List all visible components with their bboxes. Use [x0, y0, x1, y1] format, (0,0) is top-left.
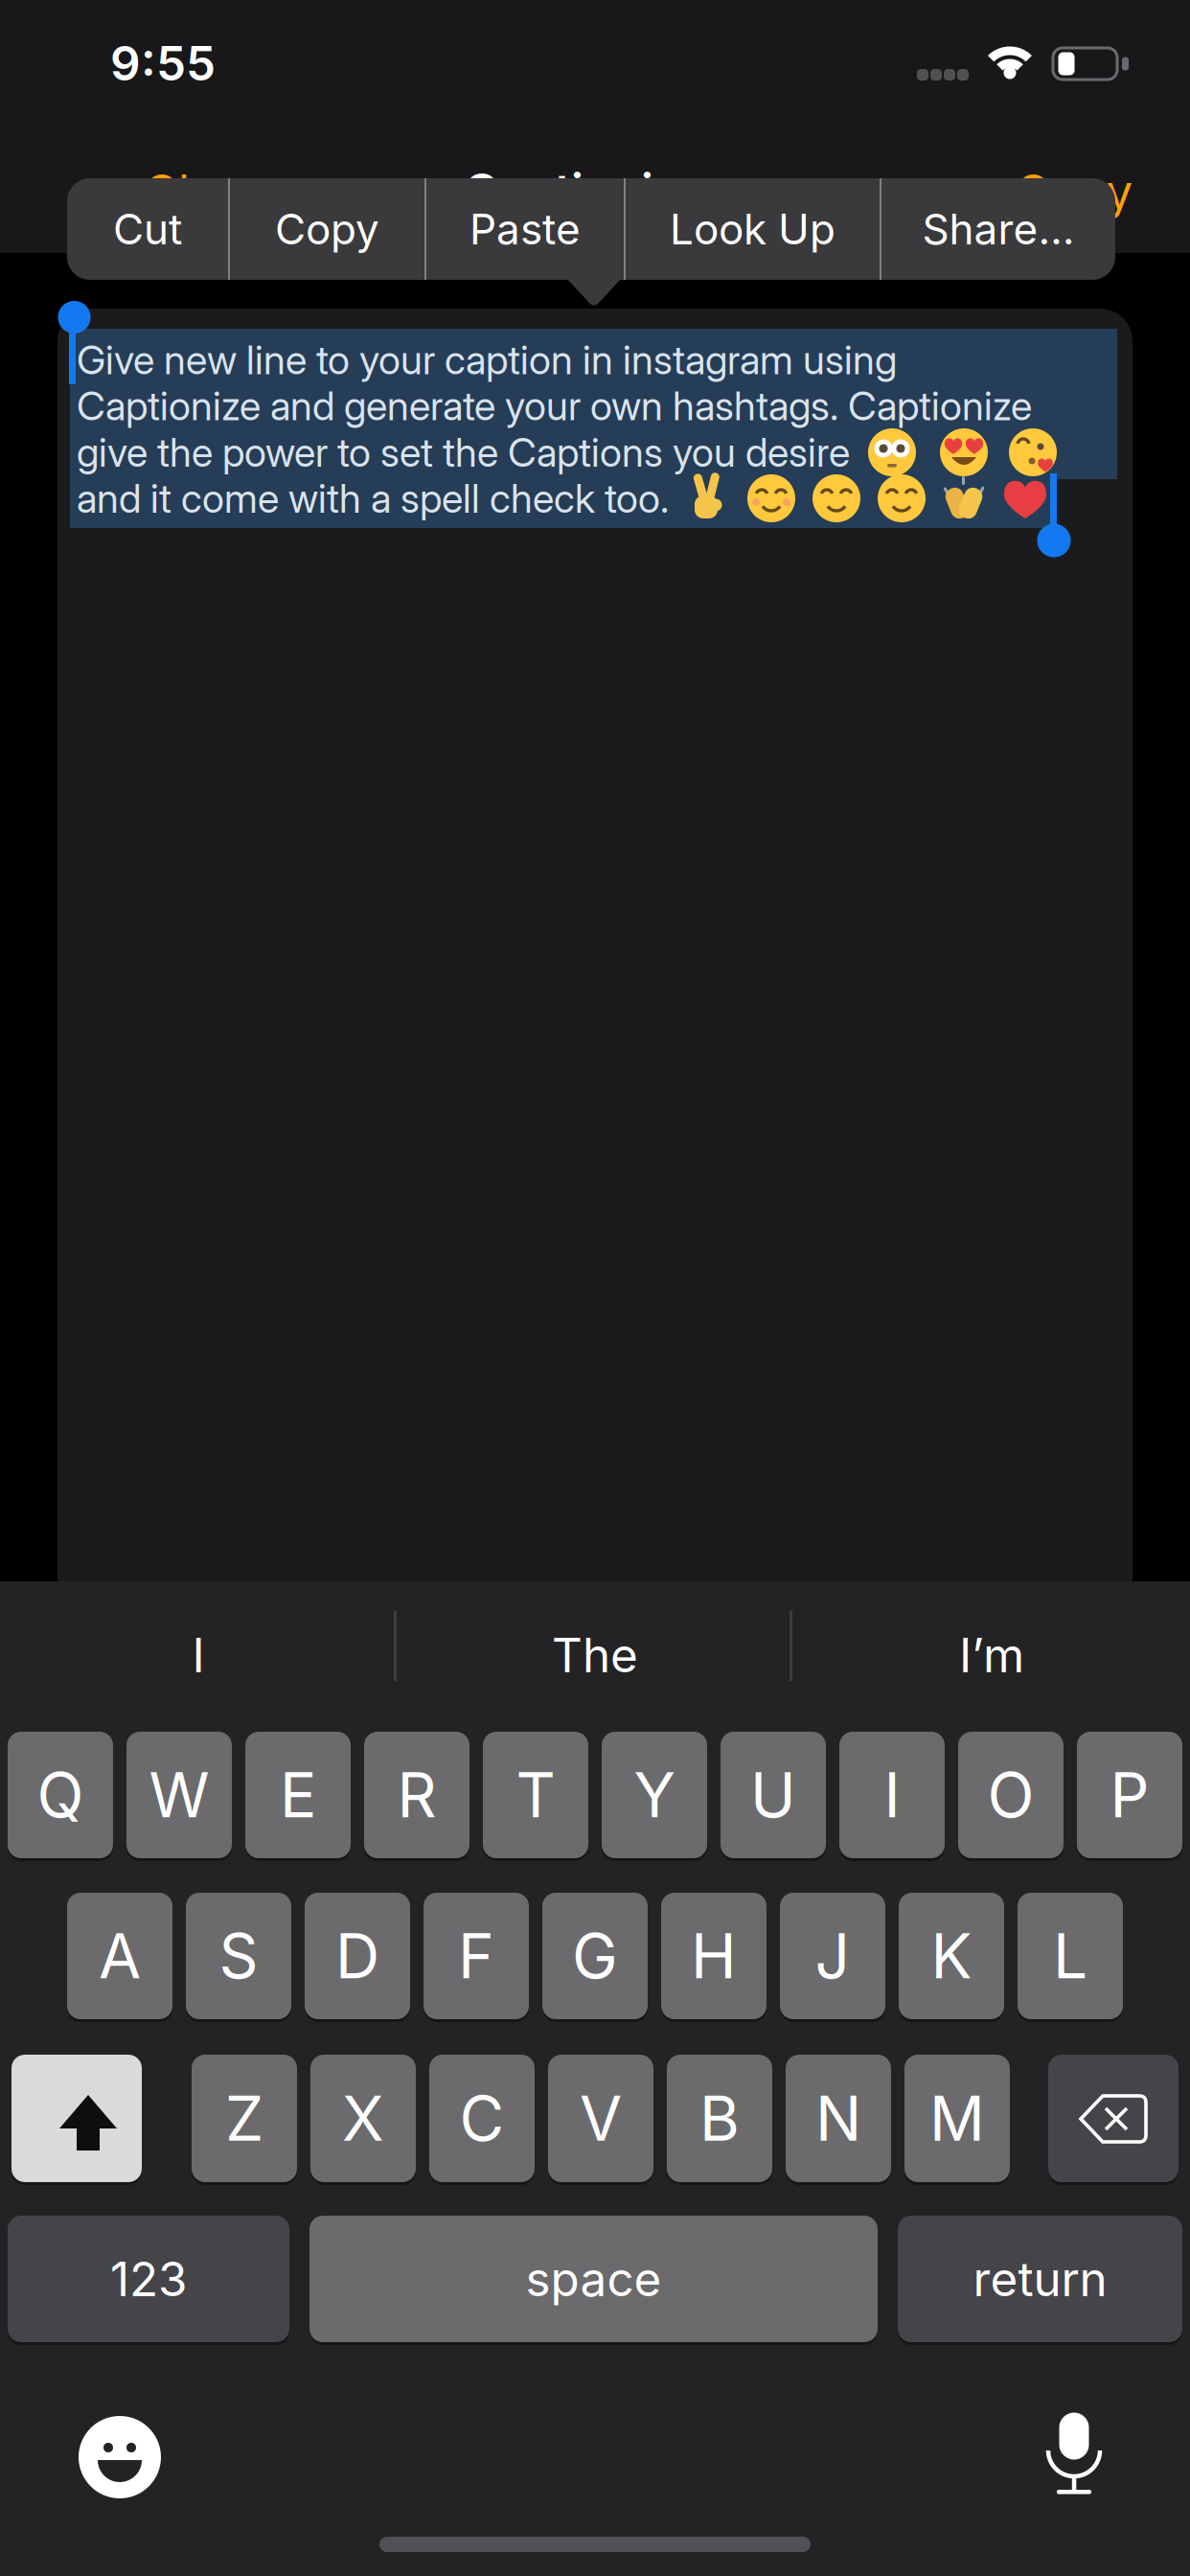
- staticText: L: [1053, 1920, 1087, 1992]
- staticText: Copy: [275, 204, 379, 254]
- button[interactable]: F: [423, 1891, 529, 2021]
- staticText: 9:55: [110, 35, 216, 91]
- button[interactable]: Emoji: [77, 2414, 163, 2500]
- staticText: A: [99, 1920, 141, 1992]
- button[interactable]: B: [667, 2053, 772, 2184]
- button[interactable]: Look Up: [626, 178, 880, 280]
- staticText: X: [342, 2082, 384, 2155]
- staticText: Paste: [469, 204, 581, 254]
- button[interactable]: C: [429, 2053, 535, 2184]
- staticText: S: [219, 1920, 258, 1992]
- staticText: Y: [634, 1759, 675, 1831]
- staticText: K: [931, 1920, 972, 1992]
- button[interactable]: Copy: [230, 178, 424, 280]
- staticText: Z: [225, 2082, 263, 2155]
- button[interactable]: 123: [8, 2214, 289, 2344]
- staticText: Clear: [144, 164, 263, 220]
- button[interactable]: A: [67, 1891, 172, 2021]
- staticText: D: [335, 1920, 379, 1992]
- button[interactable]: The: [399, 1583, 791, 1727]
- staticText: return: [973, 2251, 1107, 2307]
- staticText: Captionize and generate your own hashtag…: [77, 382, 1032, 429]
- button[interactable]: S: [186, 1891, 291, 2021]
- staticText: The: [552, 1627, 638, 1683]
- staticText: B: [699, 2082, 740, 2155]
- button[interactable]: Delete: [1048, 2053, 1179, 2184]
- button[interactable]: Clear: [144, 164, 263, 220]
- button[interactable]: I: [839, 1730, 945, 1860]
- button[interactable]: Paste: [426, 178, 624, 280]
- button[interactable]: Dictate: [1031, 2412, 1117, 2498]
- staticText: O: [987, 1759, 1034, 1831]
- button[interactable]: G: [542, 1891, 648, 2021]
- staticText: R: [397, 1759, 436, 1831]
- staticText: and it come with a spell check too.: [77, 475, 669, 522]
- staticText: H: [691, 1920, 737, 1992]
- staticText: Cut: [113, 204, 182, 254]
- staticText: T: [516, 1759, 555, 1831]
- staticText: Captionizer: [464, 163, 726, 219]
- staticText: I’m: [959, 1627, 1024, 1683]
- button[interactable]: L: [1018, 1891, 1123, 2021]
- staticText: N: [815, 2082, 861, 2155]
- button[interactable]: M: [904, 2053, 1010, 2184]
- button[interactable]: T: [483, 1730, 588, 1860]
- button[interactable]: Q: [8, 1730, 113, 1860]
- staticText: give the power to set the Captions you d…: [77, 429, 850, 476]
- button[interactable]: O: [958, 1730, 1064, 1860]
- button[interactable]: Shift: [11, 2053, 142, 2184]
- button[interactable]: N: [786, 2053, 891, 2184]
- button[interactable]: Cut: [67, 178, 228, 280]
- staticText: V: [580, 2082, 622, 2155]
- staticText: E: [280, 1759, 316, 1831]
- button[interactable]: K: [899, 1891, 1004, 2021]
- button[interactable]: R: [364, 1730, 469, 1860]
- button[interactable]: X: [310, 2053, 416, 2184]
- staticText: U: [750, 1759, 796, 1831]
- staticText: 123: [110, 2251, 187, 2307]
- button[interactable]: E: [245, 1730, 351, 1860]
- staticText: I: [884, 1759, 900, 1831]
- staticText: F: [458, 1920, 494, 1992]
- button[interactable]: U: [721, 1730, 826, 1860]
- button[interactable]: J: [780, 1891, 885, 2021]
- staticText: space: [526, 2251, 662, 2307]
- button[interactable]: I: [26, 1583, 371, 1727]
- button[interactable]: return: [898, 2214, 1182, 2344]
- staticText: G: [572, 1920, 618, 1992]
- staticText: Give new line to your caption in instagr…: [77, 336, 897, 383]
- button[interactable]: Y: [602, 1730, 707, 1860]
- button[interactable]: Share…: [881, 178, 1115, 280]
- staticText: M: [929, 2082, 985, 2155]
- button[interactable]: V: [548, 2053, 653, 2184]
- staticText: P: [1110, 1759, 1149, 1831]
- button[interactable]: W: [126, 1730, 232, 1860]
- button[interactable]: space: [309, 2214, 878, 2344]
- button[interactable]: P: [1077, 1730, 1182, 1860]
- button[interactable]: Z: [192, 2053, 297, 2184]
- staticText: Look Up: [670, 204, 835, 254]
- staticText: I: [192, 1627, 205, 1683]
- button[interactable]: H: [661, 1891, 767, 2021]
- button[interactable]: I’m: [819, 1583, 1164, 1727]
- button[interactable]: D: [305, 1891, 410, 2021]
- staticText: Share…: [922, 204, 1075, 254]
- staticText: W: [149, 1759, 209, 1831]
- staticText: J: [815, 1920, 850, 1992]
- staticText: Copy: [1015, 164, 1133, 220]
- staticText: C: [459, 2082, 504, 2155]
- staticText: Q: [37, 1759, 84, 1831]
- button[interactable]: Copy: [1015, 164, 1133, 220]
